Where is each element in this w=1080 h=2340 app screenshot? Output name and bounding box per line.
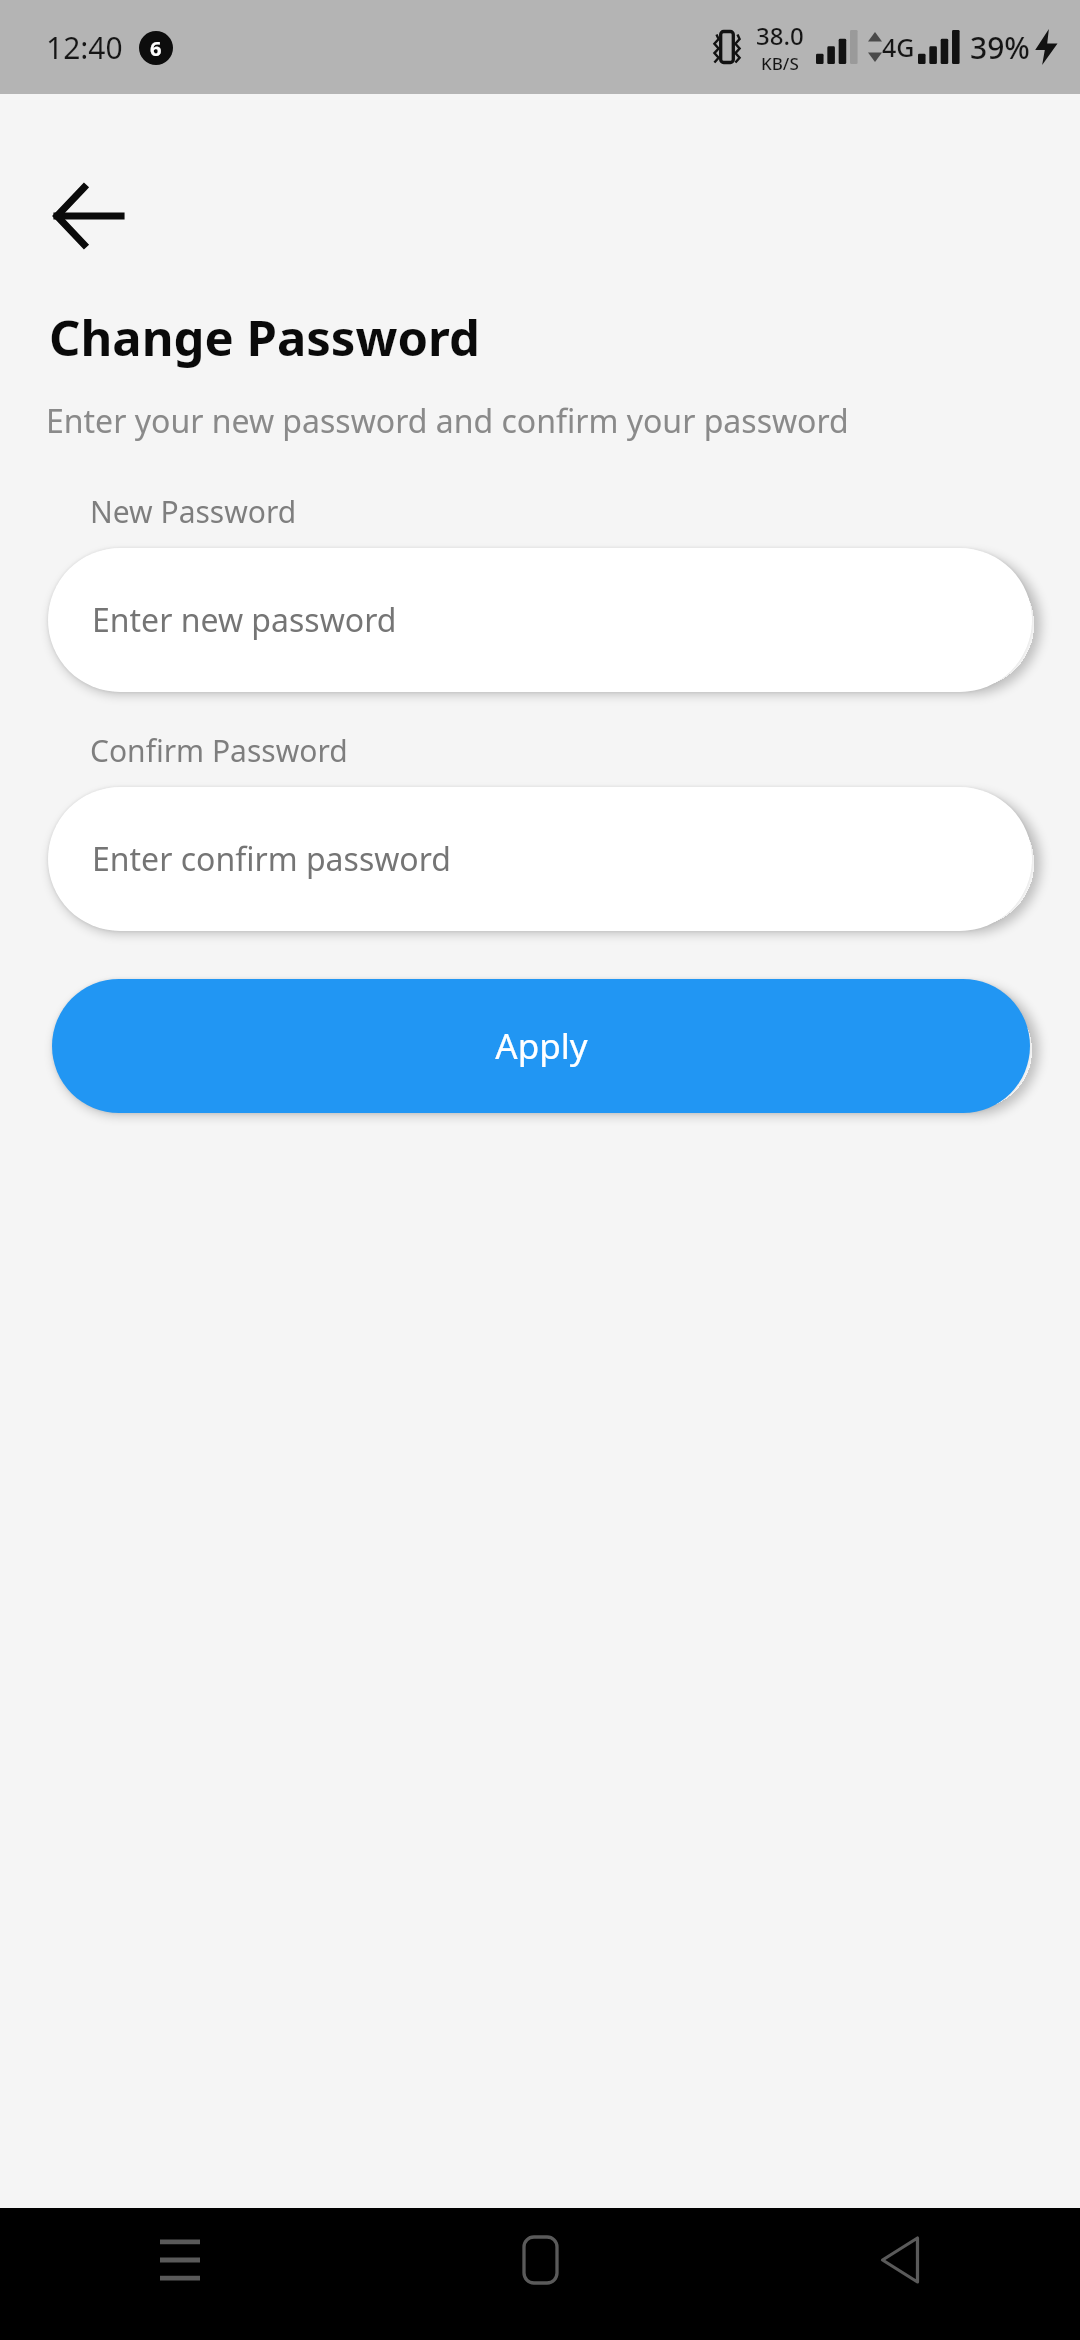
staticText: 6 bbox=[150, 35, 162, 62]
staticText: KB/S bbox=[761, 52, 799, 75]
staticText: New Password bbox=[90, 491, 297, 532]
button[interactable]: Home bbox=[360, 2208, 720, 2340]
staticText: 12:40 bbox=[46, 27, 123, 68]
staticText: Apply bbox=[495, 1022, 588, 1070]
staticText: Enter your new password and confirm your… bbox=[46, 399, 849, 443]
button[interactable]: Back bbox=[28, 156, 148, 276]
staticText: 39% bbox=[970, 27, 1030, 68]
button[interactable]: Enter new password bbox=[48, 548, 1032, 692]
staticText: 38.0 bbox=[756, 19, 804, 52]
button[interactable]: Enter confirm password bbox=[48, 787, 1032, 931]
staticText: Confirm Password bbox=[90, 730, 348, 771]
staticText: Change Password bbox=[49, 304, 480, 371]
staticText: 4G bbox=[882, 30, 915, 64]
button[interactable]: Apply bbox=[52, 979, 1030, 1113]
staticText: Enter new password bbox=[92, 598, 397, 642]
button[interactable]: Back bbox=[720, 2208, 1080, 2340]
button[interactable]: Recent apps bbox=[0, 2208, 360, 2340]
staticText: Enter confirm password bbox=[92, 837, 451, 881]
